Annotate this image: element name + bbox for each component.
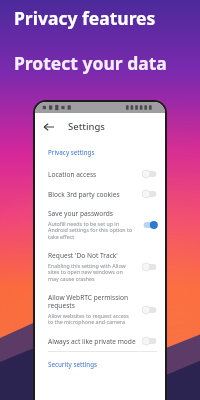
button[interactable]: Toggle off — [142, 262, 158, 272]
button[interactable]: Save your passwords — [35, 204, 165, 246]
button[interactable]: Privacy settings — [35, 146, 165, 159]
button[interactable]: Toggle off — [142, 189, 158, 199]
staticText: Block 3rd party cookies — [48, 190, 120, 199]
staticText: Request 'Do Not Track' — [48, 251, 118, 260]
staticText: Protect your data — [14, 51, 167, 75]
staticText: Autofill needs to be set up in Android s… — [48, 220, 133, 241]
staticText: Save your passwords — [48, 209, 114, 218]
button[interactable]: Back — [40, 118, 58, 136]
staticText: Location access — [48, 170, 97, 179]
staticText: Settings — [68, 120, 105, 133]
staticText: Allow websites to request access to the … — [48, 312, 129, 326]
staticText: Enabling this setting with Allow sites t… — [48, 262, 126, 283]
button[interactable]: Location access — [35, 164, 165, 184]
button[interactable]: Block 3rd party cookies — [35, 184, 165, 204]
button[interactable]: Allow WebRTC permission requests — [35, 288, 165, 331]
staticText: Privacy features — [14, 6, 156, 30]
button[interactable]: Toggle off — [142, 336, 158, 346]
staticText: Always act like private mode — [48, 337, 136, 346]
staticText: Security settings — [48, 360, 98, 368]
staticText: Allow WebRTC permission requests — [48, 293, 129, 310]
staticText: Privacy settings — [48, 148, 95, 156]
button[interactable]: Request 'Do Not Track' — [35, 246, 165, 288]
button[interactable]: Toggle off — [142, 169, 158, 179]
button[interactable]: Always act like private mode — [35, 331, 165, 351]
button[interactable]: Security settings — [35, 359, 165, 371]
button[interactable]: Toggle off — [142, 305, 158, 315]
button[interactable]: Toggle on — [142, 220, 158, 230]
